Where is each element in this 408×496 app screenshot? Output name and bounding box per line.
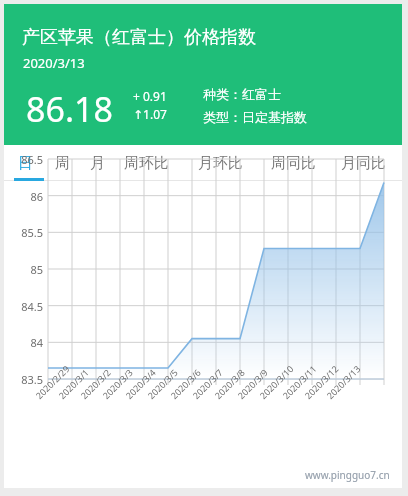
staticText: 周环比 [124, 154, 169, 173]
button[interactable]: 周 [55, 145, 70, 181]
staticText: 种类：红富士 [203, 86, 281, 102]
staticText: 2020/3/2 [78, 366, 113, 401]
button[interactable]: 月环比 [198, 145, 243, 181]
staticText: 86 [4, 189, 43, 204]
other: 2020/3/7 [190, 366, 225, 401]
staticText: 2020/3/7 [190, 366, 225, 401]
other: 2020/3/5 [145, 366, 180, 401]
staticText: 周 [55, 154, 70, 173]
staticText: 2020/3/10 [257, 362, 296, 401]
staticText: 月 [90, 154, 105, 173]
staticText: 2020/3/4 [123, 366, 158, 401]
staticText: 产区苹果（红富士）价格指数 [22, 26, 256, 49]
button[interactable]: 日 [18, 145, 33, 181]
other: 2020/3/6 [168, 366, 203, 401]
staticText: 2020/3/9 [235, 366, 270, 401]
button[interactable]: 月同比 [341, 145, 386, 181]
staticText: 2020/2/29 [33, 362, 72, 401]
staticText: 84 [4, 335, 43, 350]
staticText: 日 [18, 154, 33, 173]
staticText: 类型：日定基指数 [203, 109, 307, 125]
staticText: 2020/3/5 [145, 366, 180, 401]
other: 2020/3/8 [212, 366, 247, 401]
other: 2020/3/2 [78, 366, 113, 401]
staticText: + 0.91 [133, 88, 167, 104]
staticText: 周同比 [271, 154, 316, 173]
staticText: 85 [4, 262, 43, 277]
staticText: 月环比 [198, 154, 243, 173]
other: 2020/3/4 [123, 366, 158, 401]
staticText: ↑1.07 [133, 106, 167, 122]
staticText: 2020/3/12 [302, 362, 341, 401]
staticText: 2020/3/8 [212, 366, 247, 401]
staticText: 83.5 [4, 372, 43, 387]
staticText: www.pingguo7.cn [305, 468, 390, 482]
staticText: 月同比 [341, 154, 386, 173]
staticText: 2020/3/6 [168, 366, 203, 401]
other: 2020/2/29 [33, 362, 72, 401]
other: 2020/3/11 [280, 362, 319, 401]
staticText: 2020/3/13 [23, 54, 85, 72]
button[interactable]: 周环比 [124, 145, 169, 181]
staticText: 84.5 [4, 299, 43, 314]
staticText: 2020/3/13 [324, 362, 363, 401]
staticText: 86.18 [26, 86, 113, 132]
other: 2020/3/13 [324, 362, 363, 401]
other: 2020/3/9 [235, 366, 270, 401]
other: 2020/3/10 [257, 362, 296, 401]
other: 2020/3/1 [56, 366, 91, 401]
button[interactable]: 周同比 [271, 145, 316, 181]
staticText: 2020/3/11 [280, 362, 319, 401]
staticText: 85.5 [4, 225, 43, 240]
staticText: 2020/3/3 [100, 366, 135, 401]
other: 2020/3/3 [100, 366, 135, 401]
staticText: 86.5 [4, 152, 43, 167]
button[interactable]: 月 [90, 145, 105, 181]
other: 2020/3/12 [302, 362, 341, 401]
staticText: 2020/3/1 [56, 366, 91, 401]
